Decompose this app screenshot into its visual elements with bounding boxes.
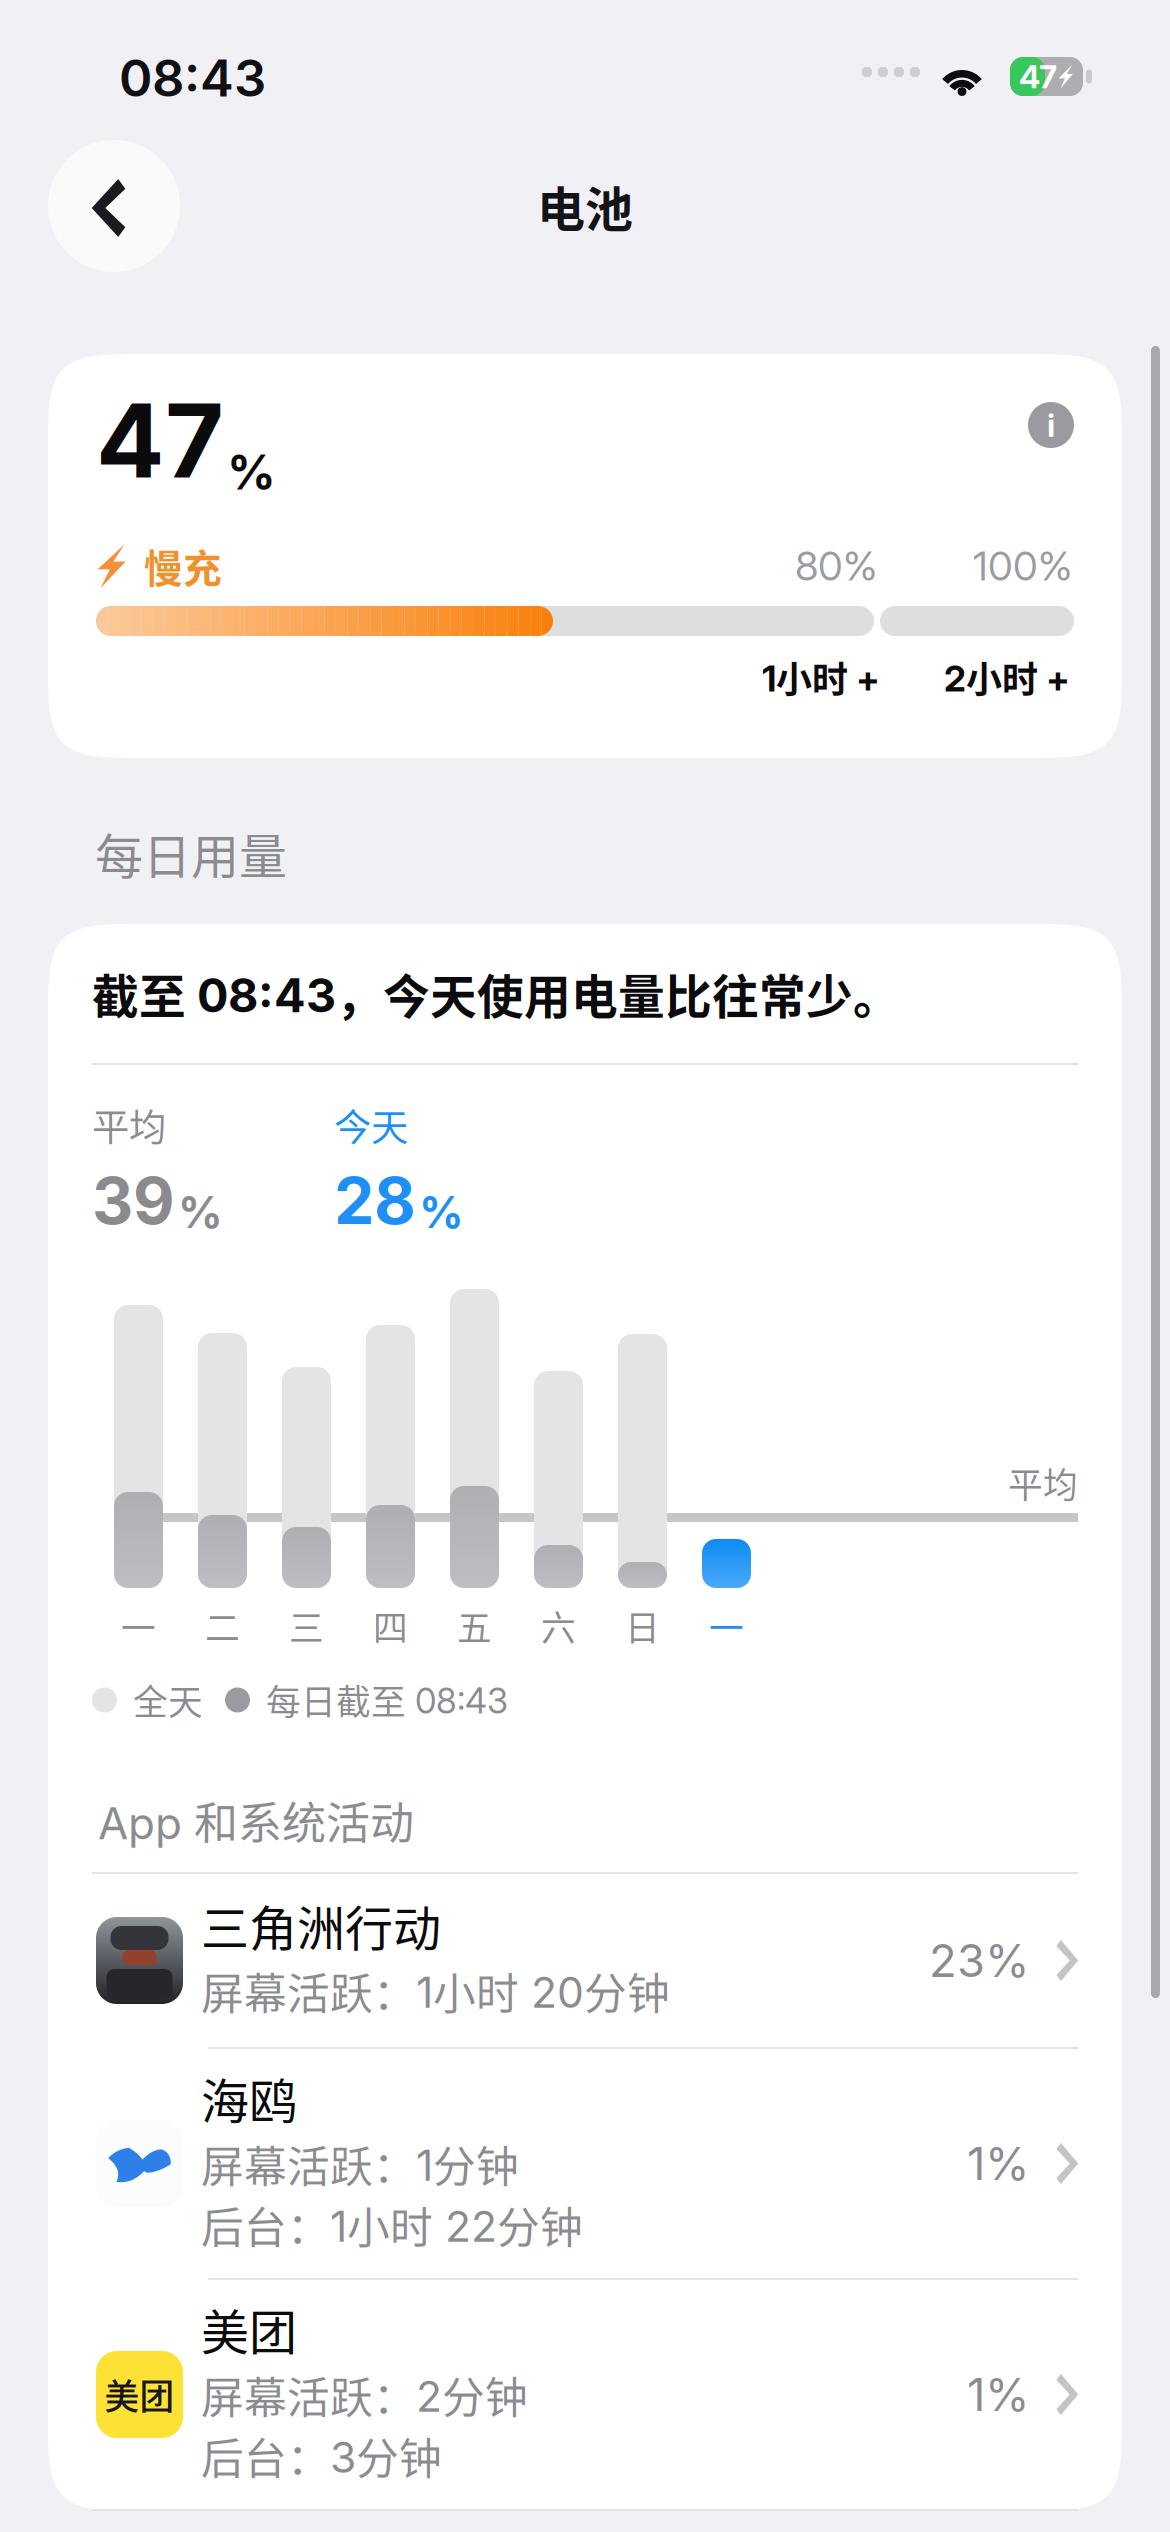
staticText: 80% bbox=[795, 542, 877, 590]
staticText: % bbox=[419, 1185, 464, 1238]
staticText: 慢充 bbox=[144, 538, 222, 594]
staticText: 08:43 bbox=[119, 47, 266, 109]
staticText: % bbox=[227, 443, 276, 501]
staticText: 屏幕活跃：1分钟 bbox=[201, 2133, 519, 2195]
button[interactable]: 海鸥 bbox=[48, 2049, 1122, 2278]
staticText: 六 bbox=[541, 1601, 576, 1651]
staticText: 今天 bbox=[334, 1098, 408, 1152]
staticText: 1% bbox=[967, 2136, 1030, 2191]
staticText: 每日用量 bbox=[95, 818, 287, 888]
staticText: 二 bbox=[205, 1601, 240, 1651]
staticText: 39 bbox=[92, 1162, 175, 1239]
staticText: 三 bbox=[289, 1601, 324, 1651]
staticText: 美团 bbox=[201, 2294, 297, 2364]
staticText: 截至 08:43，今天使用电量比往常少。 bbox=[92, 960, 900, 1027]
staticText: 一 bbox=[709, 1601, 744, 1651]
staticText: 海鸥 bbox=[201, 2063, 297, 2133]
staticText: 日 bbox=[625, 1601, 660, 1651]
staticText: 后台：1小时 22分钟 bbox=[201, 2194, 583, 2256]
staticText: 100% bbox=[973, 542, 1072, 590]
button[interactable]: 美团 bbox=[48, 2280, 1122, 2509]
staticText: 五 bbox=[457, 1601, 492, 1651]
staticText: 平均 bbox=[1008, 1458, 1078, 1508]
staticText: 屏幕活跃：1小时 20分钟 bbox=[201, 1960, 670, 2022]
button[interactable]: Back bbox=[48, 140, 180, 272]
staticText: i bbox=[1047, 406, 1055, 444]
staticText: % bbox=[178, 1185, 223, 1238]
staticText: 平均 bbox=[92, 1098, 166, 1152]
staticText: 1小时 + bbox=[762, 651, 880, 703]
staticText: 三角洲行动 bbox=[201, 1890, 441, 1960]
button[interactable]: 三角洲行动 bbox=[48, 1874, 1122, 2047]
staticText: 美团 bbox=[104, 2369, 174, 2420]
staticText: 2小时 + bbox=[944, 651, 1070, 703]
staticText: 后台：3分钟 bbox=[201, 2425, 442, 2487]
staticText: 电池 bbox=[537, 171, 633, 241]
staticText: 28 bbox=[334, 1162, 416, 1239]
staticText: 23% bbox=[929, 1933, 1030, 1988]
staticText: 47 bbox=[1019, 57, 1057, 96]
staticText: 四 bbox=[373, 1601, 408, 1651]
staticText: 一 bbox=[121, 1601, 156, 1651]
staticText: 每日截至 08:43 bbox=[266, 1675, 508, 1725]
staticText: 屏幕活跃：2分钟 bbox=[201, 2364, 528, 2426]
staticText: 47 bbox=[96, 379, 224, 502]
button[interactable]: Battery information bbox=[1028, 402, 1074, 448]
staticText: 1% bbox=[967, 2367, 1030, 2422]
staticText: 全天 bbox=[133, 1675, 203, 1725]
staticText: App 和系统活动 bbox=[98, 1788, 414, 1852]
